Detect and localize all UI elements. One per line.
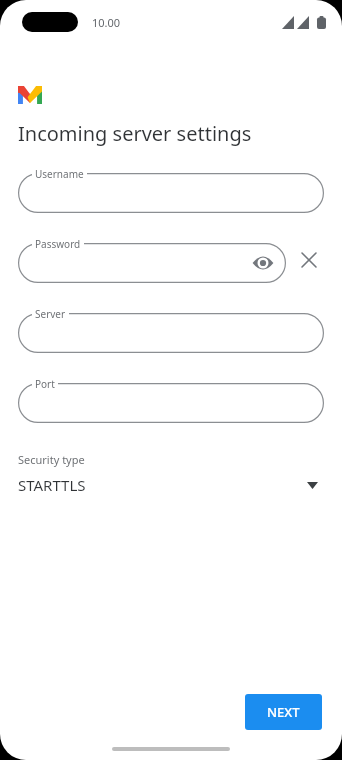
button[interactable]: Show password — [250, 250, 276, 276]
staticText: STARTTLS — [18, 475, 86, 495]
staticText: Username — [35, 167, 84, 179]
button[interactable]: NEXT — [245, 694, 322, 730]
staticText: NEXT — [267, 703, 300, 721]
staticText: 10.00 — [92, 15, 121, 30]
button[interactable]: Security type — [18, 452, 324, 495]
button[interactable]: Clear password — [294, 245, 324, 275]
staticText: Port — [35, 377, 55, 389]
button[interactable]: Show password — [18, 243, 286, 283]
button[interactable] — [18, 173, 324, 213]
button[interactable] — [18, 313, 324, 353]
staticText: Server — [35, 307, 66, 319]
staticText: Incoming server settings — [18, 120, 252, 147]
button[interactable] — [18, 383, 324, 423]
staticText: Security type — [18, 452, 85, 467]
staticText: Password — [35, 237, 81, 249]
